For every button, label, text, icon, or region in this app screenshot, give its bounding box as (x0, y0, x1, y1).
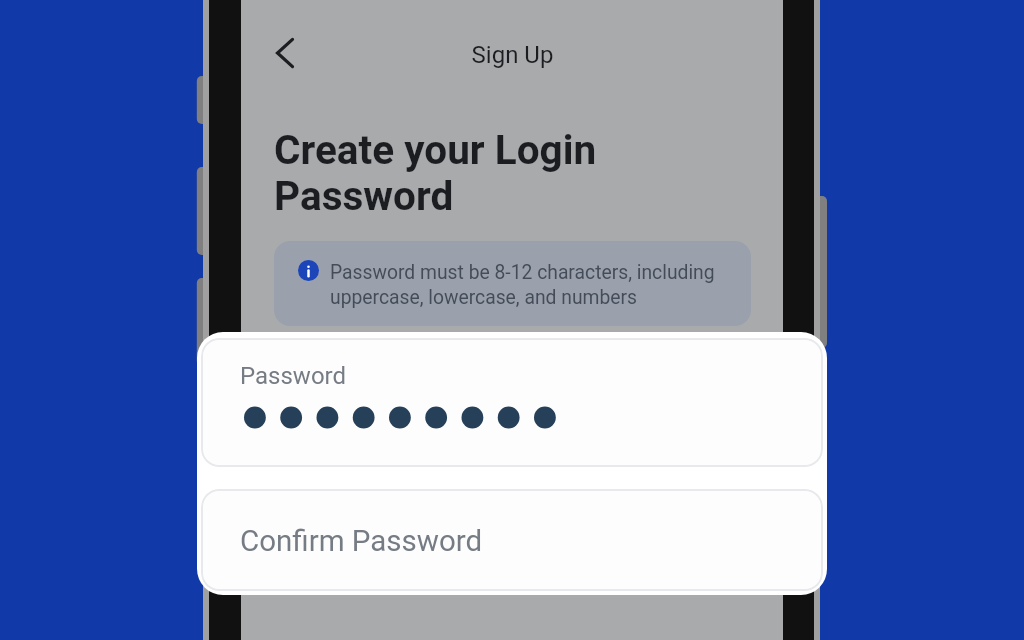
staticText: Sign Up (241, 41, 784, 69)
staticText: Password (240, 362, 347, 390)
button[interactable]: Back (265, 33, 305, 73)
button[interactable]: Confirm Password (201, 489, 823, 591)
staticText: Create your Login Password (274, 126, 597, 220)
staticText: Confirm Password (240, 524, 483, 559)
button[interactable]: Password field (201, 338, 823, 467)
staticText: Password must be 8-12 characters, includ… (330, 261, 715, 309)
